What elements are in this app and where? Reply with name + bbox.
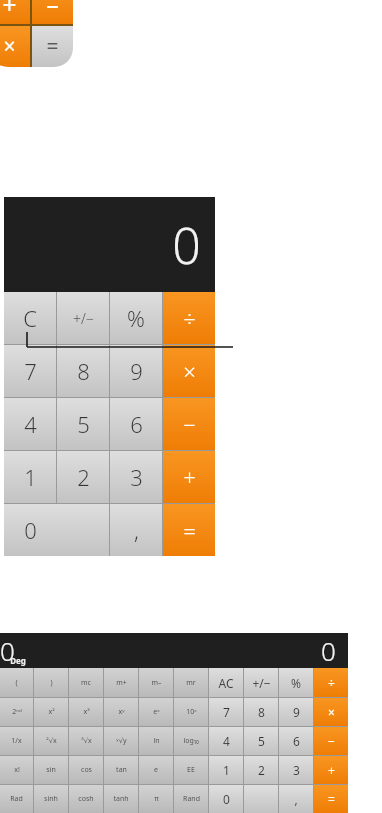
button[interactable]: mc — [69, 668, 103, 697]
button[interactable]: 0 — [209, 785, 243, 813]
button[interactable]: 2ⁿᵈ — [0, 698, 33, 726]
button[interactable]: 8 — [244, 698, 278, 726]
staticText: 3 — [293, 762, 300, 778]
button[interactable]: + — [163, 451, 215, 503]
button[interactable]: 6 — [279, 727, 313, 755]
button[interactable]: 3 — [110, 451, 162, 503]
button[interactable]: 8 — [57, 345, 109, 397]
staticText: 6 — [130, 409, 143, 439]
staticText: Rand — [183, 794, 200, 804]
button[interactable]: m+ — [104, 668, 138, 697]
staticText: 10ˣ — [186, 707, 197, 717]
button[interactable]: − — [314, 727, 348, 755]
staticText: × — [183, 356, 196, 386]
staticText: log₁₀ — [183, 736, 199, 746]
button[interactable]: × — [314, 698, 348, 726]
button[interactable]: mr — [174, 668, 208, 697]
button[interactable]: m– — [139, 668, 173, 697]
staticText: Rad — [10, 794, 23, 804]
button[interactable]: ( — [0, 668, 33, 697]
button[interactable]: 7 — [209, 698, 243, 726]
staticText: 0 — [223, 791, 230, 807]
staticText: e — [154, 765, 158, 775]
staticText: x³ — [83, 707, 90, 717]
button[interactable]: eˣ — [139, 698, 173, 726]
button[interactable]: 0 — [4, 504, 109, 556]
button[interactable]: × — [163, 345, 215, 397]
button[interactable]: C — [4, 292, 56, 344]
button[interactable]: 1/x — [0, 727, 33, 755]
button[interactable]: tan — [104, 756, 138, 784]
button[interactable]: 1 — [4, 451, 56, 503]
staticText: ʸ√y — [116, 736, 127, 746]
button[interactable]: sinh — [34, 785, 68, 813]
staticText: – — [46, 0, 59, 21]
staticText: × — [328, 704, 335, 720]
button[interactable]: sin — [34, 756, 68, 784]
button[interactable]: 7 — [4, 345, 56, 397]
staticText: 8 — [258, 704, 265, 720]
button[interactable]: Calculator app icon — [0, 0, 73, 67]
button[interactable]: cosh — [69, 785, 103, 813]
button[interactable] — [244, 785, 278, 813]
staticText: ÷ — [328, 675, 335, 691]
button[interactable]: cos — [69, 756, 103, 784]
button[interactable]: ÷ — [163, 292, 215, 344]
staticText: ) — [50, 678, 53, 688]
button[interactable]: +/− — [57, 292, 109, 344]
button[interactable]: AC — [209, 668, 243, 697]
button[interactable]: 5 — [244, 727, 278, 755]
button[interactable]: = — [314, 785, 348, 813]
staticText: x² — [48, 707, 55, 717]
button[interactable]: ln — [139, 727, 173, 755]
button[interactable]: ʸ√y — [104, 727, 138, 755]
button[interactable]: ÷ — [314, 668, 348, 697]
staticText: 9 — [130, 356, 143, 386]
button[interactable]: 2 — [244, 756, 278, 784]
button[interactable]: Rand — [174, 785, 208, 813]
staticText: mc — [81, 678, 91, 688]
staticText: cos — [81, 765, 92, 775]
button[interactable]: x! — [0, 756, 33, 784]
button[interactable]: 4 — [4, 398, 56, 450]
button[interactable]: 2 — [57, 451, 109, 503]
staticText: 0 — [172, 211, 201, 279]
button[interactable]: − — [163, 398, 215, 450]
button[interactable]: 5 — [57, 398, 109, 450]
button[interactable]: + — [314, 756, 348, 784]
button[interactable]: π — [139, 785, 173, 813]
button[interactable]: = — [163, 504, 215, 556]
button[interactable]: xʸ — [104, 698, 138, 726]
button[interactable]: Rad — [0, 785, 33, 813]
button[interactable]: 9 — [279, 698, 313, 726]
staticText: ( — [15, 678, 18, 688]
button[interactable]: x² — [34, 698, 68, 726]
staticText: = — [183, 515, 196, 545]
staticText: 8 — [77, 356, 90, 386]
staticText: − — [183, 409, 196, 439]
button[interactable]: , — [110, 504, 162, 556]
button[interactable]: 9 — [110, 345, 162, 397]
button[interactable]: ) — [34, 668, 68, 697]
button[interactable]: 4 — [209, 727, 243, 755]
button[interactable]: ²√x — [34, 727, 68, 755]
button[interactable]: , — [279, 785, 313, 813]
button[interactable]: tanh — [104, 785, 138, 813]
button[interactable]: EE — [174, 756, 208, 784]
staticText: ³√x — [81, 736, 92, 746]
staticText: = — [328, 791, 335, 807]
button[interactable]: % — [110, 292, 162, 344]
staticText: 1/x — [11, 736, 22, 746]
button[interactable]: 10ˣ — [174, 698, 208, 726]
button[interactable]: x³ — [69, 698, 103, 726]
button[interactable]: +/− — [244, 668, 278, 697]
button[interactable]: e — [139, 756, 173, 784]
button[interactable]: % — [279, 668, 313, 697]
button[interactable]: 6 — [110, 398, 162, 450]
button[interactable]: 1 — [209, 756, 243, 784]
button[interactable]: ³√x — [69, 727, 103, 755]
button[interactable]: 3 — [279, 756, 313, 784]
button[interactable]: log₁₀ — [174, 727, 208, 755]
staticText: − — [328, 733, 335, 749]
staticText: + — [328, 762, 335, 778]
